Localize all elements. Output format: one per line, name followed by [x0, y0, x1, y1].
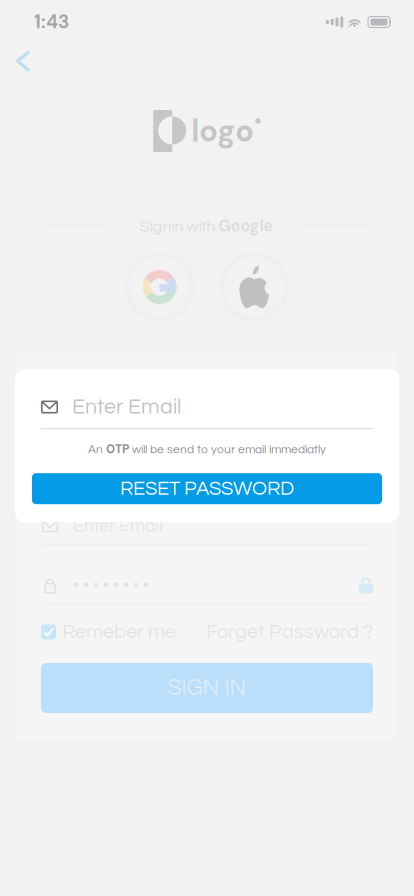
button[interactable]: RESET PASSWORD	[32, 473, 382, 504]
staticText: SIGN IN	[167, 676, 246, 700]
button[interactable]: Sign in with Google	[124, 252, 194, 322]
staticText: An OTP will be send to your email immedi…	[88, 442, 326, 457]
staticText: Enter Email	[73, 517, 163, 535]
staticText: Enter Email	[72, 396, 181, 418]
button[interactable]: SIGN IN	[41, 663, 373, 713]
staticText: RESET PASSWORD	[120, 478, 294, 499]
staticText: • • • • • • • •	[73, 576, 149, 594]
button[interactable]: Back	[1, 44, 45, 78]
staticText: Remeber me	[62, 622, 176, 642]
staticText: logo	[191, 111, 254, 151]
staticText: Forget Password ?	[206, 622, 373, 642]
button[interactable]: Sign in with Apple	[219, 252, 289, 322]
staticText: 1:43	[34, 10, 69, 34]
button[interactable]: Remeber me	[41, 622, 176, 642]
staticText: Signin with Google	[139, 216, 273, 236]
button[interactable]: Forget Password ?	[206, 622, 373, 642]
